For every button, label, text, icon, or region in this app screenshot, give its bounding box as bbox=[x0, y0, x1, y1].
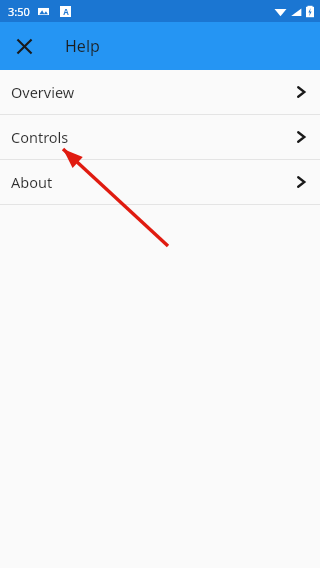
button[interactable]: Controls bbox=[0, 115, 320, 159]
staticText: 3:50 bbox=[8, 4, 30, 19]
staticText: About bbox=[11, 172, 53, 192]
staticText: Help bbox=[65, 35, 100, 57]
button[interactable]: Close bbox=[9, 31, 39, 61]
staticText: Overview bbox=[11, 82, 75, 102]
button[interactable]: Overview bbox=[0, 70, 320, 114]
staticText: Controls bbox=[11, 127, 69, 147]
staticText: A bbox=[63, 6, 69, 17]
button[interactable]: About bbox=[0, 160, 320, 204]
